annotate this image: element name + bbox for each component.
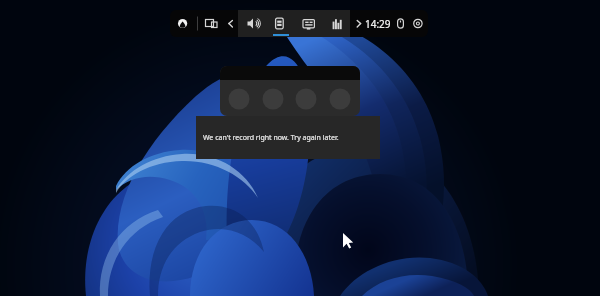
button[interactable]: Xbox home [170,10,194,37]
button[interactable]: Mouse [402,10,424,37]
button[interactable]: Back [224,10,242,37]
button[interactable]: Widgets [272,10,300,37]
button[interactable]: Audio [242,10,272,37]
button[interactable]: Capture [198,10,224,37]
staticText: 14:29 [365,17,391,31]
staticText: We can't record right now. Try again lat… [203,133,339,143]
button[interactable]: More [354,10,372,37]
button[interactable]: Performance [328,10,354,37]
button[interactable]: Xbox social [300,10,328,37]
